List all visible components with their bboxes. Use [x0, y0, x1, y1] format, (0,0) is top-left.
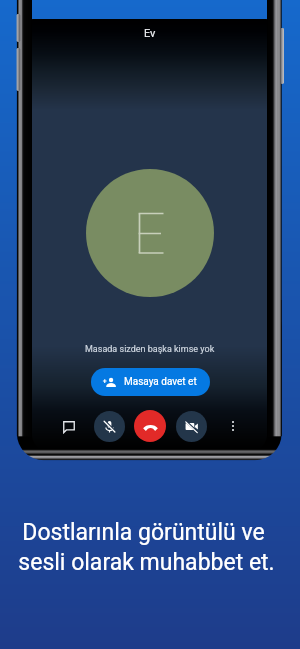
button[interactable]: Turn on camera: [176, 411, 207, 442]
staticText: Masaya davet et: [124, 376, 197, 388]
staticText: Masada sizden başka kimse yok: [85, 344, 215, 355]
button[interactable]: Chat: [53, 411, 84, 442]
staticText: Dostlarınla görüntülü ve: [22, 519, 265, 546]
button[interactable]: Unmute microphone: [94, 411, 125, 442]
button[interactable]: End call: [134, 410, 166, 442]
button[interactable]: Masaya davet et: [91, 368, 210, 396]
staticText: sesli olarak muhabbet et.: [18, 549, 275, 576]
button[interactable]: More options: [219, 412, 247, 440]
staticText: Ev: [144, 27, 156, 40]
